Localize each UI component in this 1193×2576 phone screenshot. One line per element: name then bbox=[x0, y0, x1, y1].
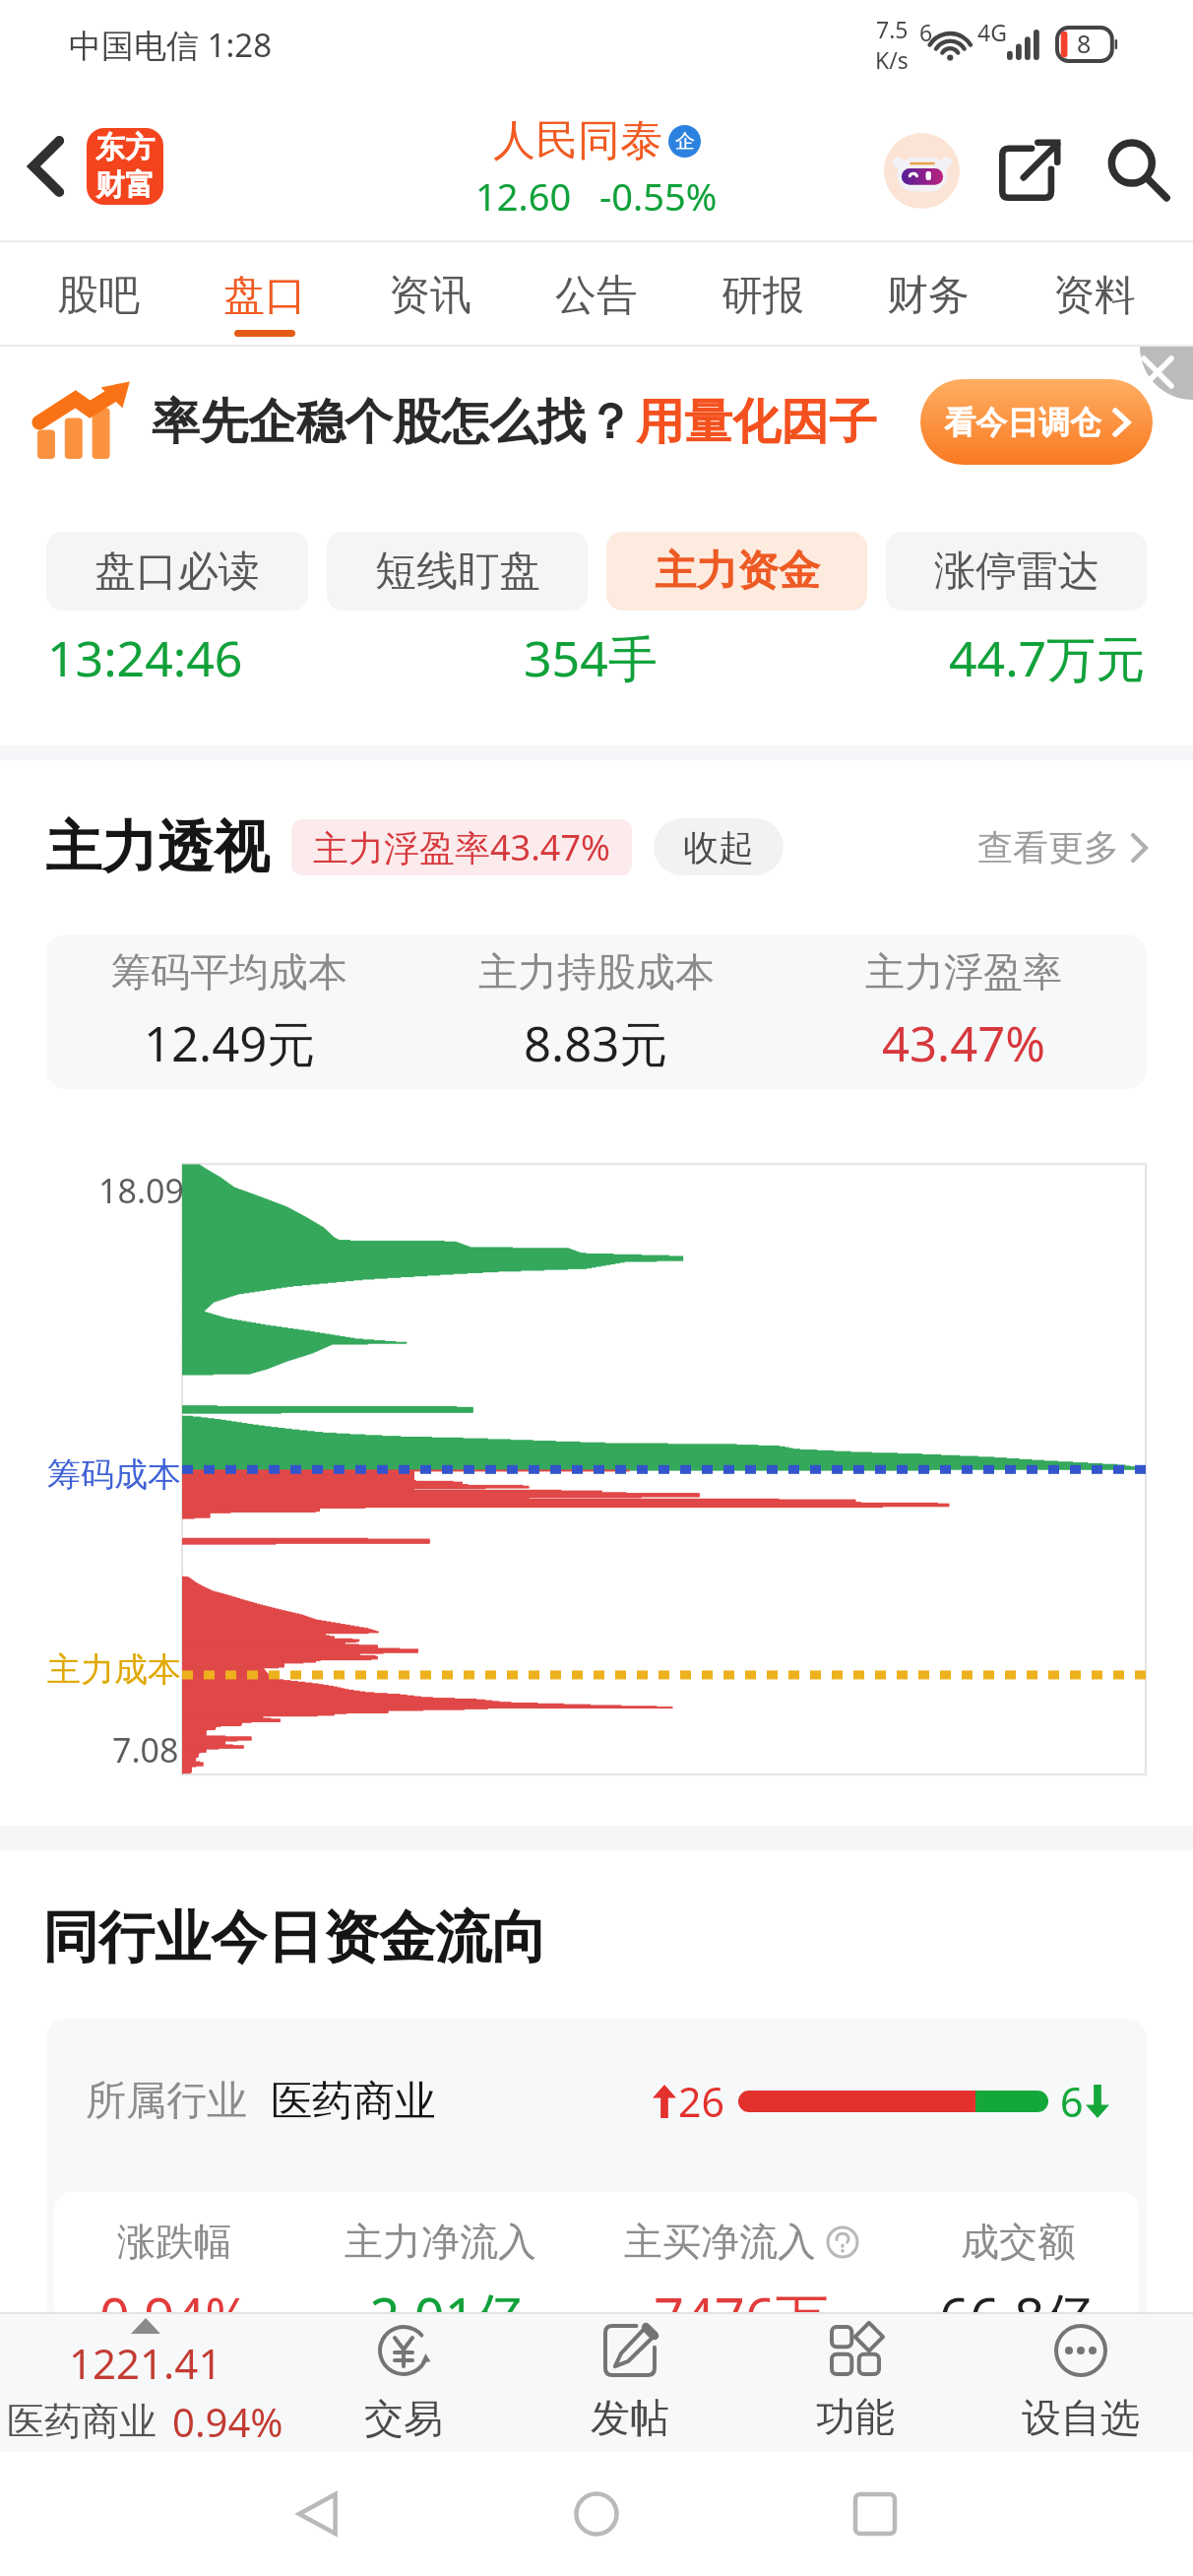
button[interactable]: 涨停雷达 bbox=[886, 532, 1147, 611]
staticText: 东方 bbox=[95, 129, 155, 166]
staticText: 发帖 bbox=[591, 2393, 669, 2442]
staticText: 看今日调仓 bbox=[944, 403, 1101, 442]
staticText: 43.47% bbox=[882, 1010, 1045, 1076]
button[interactable]: 查看更多 bbox=[977, 825, 1148, 869]
staticText: -0.55% bbox=[599, 170, 718, 222]
staticText: 公告 bbox=[555, 270, 638, 322]
staticText: 功能 bbox=[816, 2392, 895, 2441]
staticText: 主买净流入 bbox=[624, 2218, 816, 2266]
staticText: 盘口 bbox=[223, 270, 306, 322]
staticText: 1221.41 bbox=[69, 2335, 222, 2391]
staticText: 12.49元 bbox=[144, 1010, 316, 1076]
staticText: 成交额 bbox=[961, 2218, 1076, 2266]
staticText: 主力持股成本 bbox=[478, 947, 715, 997]
staticText: 主力浮盈率43.47% bbox=[313, 823, 610, 871]
staticText: 7476万 bbox=[654, 2280, 829, 2352]
button[interactable]: 设自选 bbox=[968, 2314, 1193, 2452]
button[interactable]: 资料 bbox=[1047, 240, 1142, 337]
staticText: 人民同泰 bbox=[493, 114, 662, 167]
staticText: 涨停雷达 bbox=[934, 546, 1099, 598]
button[interactable]: 资讯 bbox=[383, 240, 477, 337]
staticText: 医药商业 bbox=[271, 2076, 436, 2128]
button[interactable]: East Money bbox=[87, 128, 163, 205]
staticText: 18.09 bbox=[98, 1168, 184, 1213]
staticText: 股吧 bbox=[57, 270, 140, 322]
button[interactable]: Search bbox=[1084, 116, 1192, 225]
button[interactable]: Home bbox=[564, 2481, 629, 2546]
button[interactable]: Share bbox=[975, 116, 1084, 225]
staticText: 66.8亿 bbox=[939, 2280, 1099, 2352]
staticText: 所属行业 bbox=[86, 2076, 247, 2127]
staticText: 主力浮盈率 bbox=[865, 947, 1062, 997]
staticText: 0.94% bbox=[99, 2280, 250, 2352]
staticText: 医药商业 bbox=[7, 2398, 157, 2445]
staticText: 26 bbox=[678, 2074, 724, 2129]
button[interactable]: 看今日调仓 bbox=[920, 379, 1153, 465]
staticText: 0.94% bbox=[172, 2395, 283, 2448]
staticText: -2.01亿 bbox=[352, 2280, 529, 2352]
button[interactable]: 主力浮盈率43.47% bbox=[291, 819, 632, 875]
staticText: 主力资金 bbox=[655, 546, 820, 598]
staticText: 筹码成本 bbox=[47, 1453, 181, 1496]
staticText: 中国电信 1:28 bbox=[69, 23, 273, 67]
staticText: 8 bbox=[1077, 27, 1092, 60]
button[interactable]: 研报 bbox=[716, 240, 810, 337]
staticText: 设自选 bbox=[1022, 2393, 1140, 2442]
staticText: 交易 bbox=[364, 2394, 443, 2443]
staticText: 6 bbox=[919, 17, 933, 47]
button[interactable]: 盘口 bbox=[218, 240, 312, 337]
staticText: K/s bbox=[875, 44, 909, 75]
staticText: 12.60 bbox=[475, 170, 572, 222]
staticText: 筹码平均成本 bbox=[111, 947, 347, 997]
button[interactable]: 发帖 bbox=[517, 2314, 742, 2452]
button[interactable]: 财务 bbox=[881, 240, 975, 337]
button[interactable]: Close banner bbox=[1140, 347, 1193, 400]
button[interactable]: 主力资金 bbox=[606, 532, 867, 611]
button[interactable]: Recent apps bbox=[843, 2481, 908, 2546]
staticText: 4G bbox=[977, 17, 1007, 47]
staticText: 财务 bbox=[887, 270, 970, 322]
button[interactable]: AI assistant bbox=[867, 116, 975, 225]
button[interactable]: 交易 bbox=[290, 2314, 517, 2452]
staticText: 涨跌幅 bbox=[117, 2218, 232, 2266]
button[interactable]: 盘口必读 bbox=[46, 532, 308, 611]
staticText: 13:24:46 bbox=[47, 624, 243, 691]
staticText: 查看更多 bbox=[977, 825, 1119, 869]
staticText: 44.7万元 bbox=[949, 624, 1146, 691]
button[interactable]: 股吧 bbox=[51, 240, 146, 337]
button[interactable]: 功能 bbox=[742, 2314, 968, 2452]
staticText: 研报 bbox=[722, 270, 804, 322]
staticText: 收起 bbox=[683, 825, 754, 869]
button[interactable]: 收起 bbox=[654, 818, 784, 875]
staticText: 同行业今日资金流向 bbox=[42, 1902, 547, 1973]
staticText: 主力净流入 bbox=[345, 2218, 536, 2266]
staticText: 财富 bbox=[95, 166, 155, 204]
staticText: 盘口必读 bbox=[94, 546, 260, 598]
staticText: 7.5 bbox=[876, 14, 909, 44]
button[interactable]: Back bbox=[0, 119, 94, 214]
staticText: 7.08 bbox=[112, 1727, 179, 1772]
staticText: 短线盯盘 bbox=[375, 546, 540, 598]
staticText: 率先企稳个股怎么找？ bbox=[152, 392, 634, 453]
staticText: 资料 bbox=[1053, 270, 1136, 322]
staticText: 8.83元 bbox=[524, 1010, 668, 1076]
staticText: 主力成本 bbox=[47, 1648, 181, 1691]
staticText: 主力透视 bbox=[45, 812, 270, 881]
staticText: 企 bbox=[675, 129, 695, 154]
button[interactable]: 短线盯盘 bbox=[327, 532, 588, 611]
button[interactable]: Back bbox=[285, 2481, 350, 2546]
staticText: 354手 bbox=[524, 624, 658, 691]
button[interactable]: 1221.41 bbox=[0, 2314, 290, 2452]
staticText: 资讯 bbox=[389, 270, 471, 322]
button[interactable]: 公告 bbox=[549, 240, 644, 337]
staticText: 用量化因子 bbox=[636, 392, 877, 453]
staticText: 6 bbox=[1060, 2074, 1084, 2129]
